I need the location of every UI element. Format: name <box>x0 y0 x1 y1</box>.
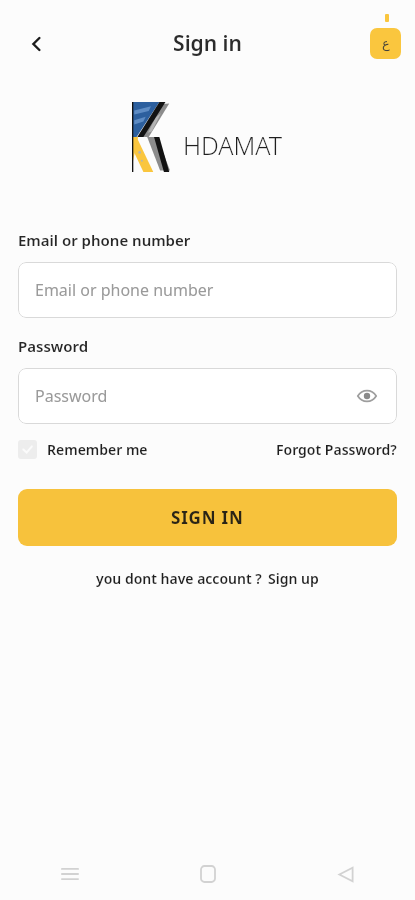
button[interactable]: Sign up <box>268 569 319 588</box>
button[interactable]: SIGN IN <box>18 489 397 546</box>
button[interactable]: Back <box>277 848 415 900</box>
staticText: Email or phone number <box>18 230 191 250</box>
staticText: HDAMAT <box>183 128 283 162</box>
button[interactable]: Recent apps <box>0 848 139 900</box>
button[interactable]: Email or phone number <box>18 262 397 318</box>
button[interactable]: Home <box>139 848 277 900</box>
staticText: ع <box>382 36 390 51</box>
staticText: Password <box>18 336 89 356</box>
staticText: Forgot Password? <box>276 440 397 459</box>
button[interactable]: Change language <box>370 28 401 59</box>
staticText: Password <box>35 385 108 407</box>
staticText: SIGN IN <box>171 506 244 529</box>
staticText: Sign in <box>173 29 242 58</box>
button[interactable]: Password <box>18 368 397 424</box>
staticText: Sign up <box>268 569 319 588</box>
staticText: Email or phone number <box>35 279 214 301</box>
button[interactable]: Back <box>14 21 60 67</box>
staticText: Remember me <box>47 440 148 459</box>
button[interactable]: Remember me <box>18 440 148 459</box>
button[interactable]: Show password <box>354 383 380 409</box>
staticText: you dont have account ? <box>96 569 262 588</box>
button[interactable]: Forgot Password? <box>276 440 397 459</box>
